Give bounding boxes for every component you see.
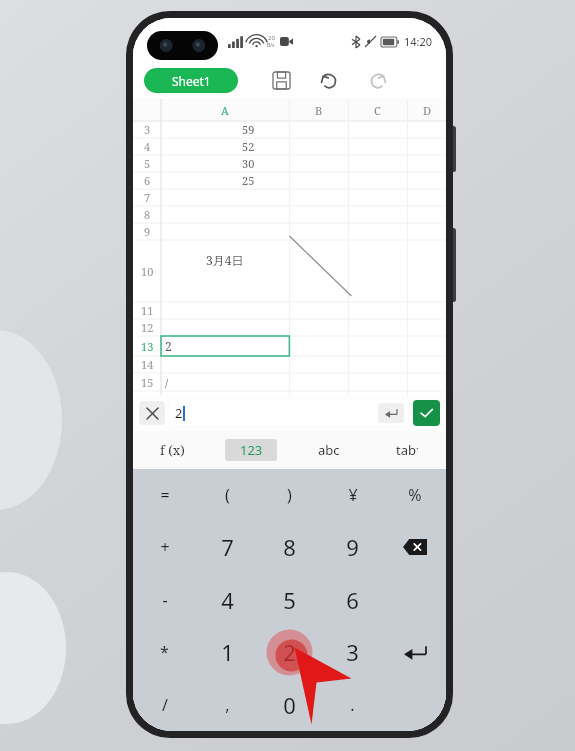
- button[interactable]: Redo: [360, 63, 394, 97]
- staticText: 9: [346, 532, 359, 562]
- staticText: A: [221, 103, 229, 118]
- staticText: 5: [144, 156, 151, 171]
- button[interactable]: =: [133, 469, 196, 521]
- staticText: 25: [242, 173, 255, 188]
- button[interactable]: tab: [368, 431, 446, 469]
- button[interactable]: 1: [196, 626, 259, 678]
- staticText: .: [350, 694, 355, 716]
- button[interactable]: 9: [321, 521, 384, 573]
- staticText: 14:20: [404, 34, 433, 49]
- button[interactable]: (: [196, 469, 259, 521]
- staticText: (: [225, 484, 230, 506]
- staticText: 3: [346, 637, 359, 667]
- staticText: 12: [141, 320, 154, 335]
- staticText: 2: [165, 338, 172, 354]
- staticText: -: [162, 589, 168, 611]
- staticText: 7: [221, 532, 234, 562]
- button[interactable]: Cancel: [139, 401, 165, 425]
- staticText: 20: [268, 34, 275, 42]
- staticText: 13: [141, 339, 154, 354]
- staticText: ¥: [348, 484, 358, 506]
- button[interactable]: Confirm: [413, 400, 440, 426]
- staticText: ·: [416, 441, 419, 455]
- staticText: 7: [144, 190, 151, 205]
- staticText: /: [162, 694, 168, 716]
- button[interactable]: /: [133, 679, 196, 731]
- staticText: =: [160, 484, 170, 506]
- staticText: 8: [283, 532, 296, 562]
- button[interactable]: %: [383, 469, 446, 521]
- staticText: C: [374, 103, 381, 118]
- button[interactable]: 2: [170, 400, 408, 426]
- staticText: %: [408, 484, 422, 506]
- button[interactable]: f (x): [133, 431, 212, 469]
- button[interactable]: ): [258, 469, 321, 521]
- staticText: 10: [141, 264, 154, 279]
- button[interactable]: Enter: [383, 626, 446, 678]
- staticText: 0: [283, 690, 296, 720]
- staticText: ): [287, 484, 292, 506]
- staticText: 11: [141, 303, 154, 318]
- staticText: /: [165, 375, 169, 390]
- staticText: 3月4日: [206, 252, 244, 268]
- staticText: 1: [221, 637, 234, 667]
- staticText: Sheet1: [172, 73, 211, 89]
- button[interactable]: Save: [264, 63, 298, 97]
- staticText: f (x): [160, 441, 185, 459]
- button[interactable]: abc: [290, 431, 368, 469]
- button[interactable]: .: [321, 679, 384, 731]
- staticText: 14: [141, 357, 154, 372]
- button[interactable]: Backspace: [383, 521, 446, 573]
- staticText: 2: [175, 404, 183, 422]
- staticText: 8: [144, 207, 151, 222]
- staticText: 3: [144, 122, 151, 137]
- button[interactable]: 4: [196, 574, 259, 626]
- button[interactable]: 5: [258, 574, 321, 626]
- staticText: D: [423, 103, 431, 118]
- staticText: 6: [346, 585, 359, 615]
- staticText: 9: [144, 224, 151, 239]
- button[interactable]: 123: [212, 431, 290, 469]
- staticText: 30: [242, 156, 255, 171]
- staticText: 59: [242, 122, 255, 137]
- button[interactable]: ¥: [321, 469, 384, 521]
- button[interactable]: Undo: [312, 63, 346, 97]
- staticText: 4: [221, 585, 234, 615]
- staticText: 4: [144, 139, 151, 154]
- staticText: 2: [283, 637, 296, 667]
- button[interactable]: *: [133, 626, 196, 678]
- staticText: abc: [318, 441, 340, 459]
- button[interactable]: +: [133, 521, 196, 573]
- button[interactable]: 8: [258, 521, 321, 573]
- staticText: tab: [396, 441, 416, 459]
- staticText: B/s: [267, 42, 275, 49]
- staticText: 15: [141, 375, 154, 390]
- button[interactable]: 7: [196, 521, 259, 573]
- staticText: B: [315, 103, 323, 118]
- staticText: 5: [283, 585, 296, 615]
- staticText: 6: [144, 173, 151, 188]
- button[interactable]: 3: [321, 626, 384, 678]
- button[interactable]: -: [133, 574, 196, 626]
- button[interactable]: Sheet1: [144, 68, 238, 93]
- button[interactable]: 6: [321, 574, 384, 626]
- staticText: *: [160, 641, 169, 663]
- staticText: ,: [225, 694, 230, 716]
- button[interactable]: New line: [378, 403, 404, 423]
- button[interactable]: ,: [196, 679, 259, 731]
- staticText: +: [160, 536, 170, 558]
- button[interactable]: 0: [258, 679, 321, 731]
- staticText: 52: [242, 139, 255, 154]
- staticText: 123: [240, 441, 263, 459]
- button[interactable]: 2: [258, 626, 321, 678]
